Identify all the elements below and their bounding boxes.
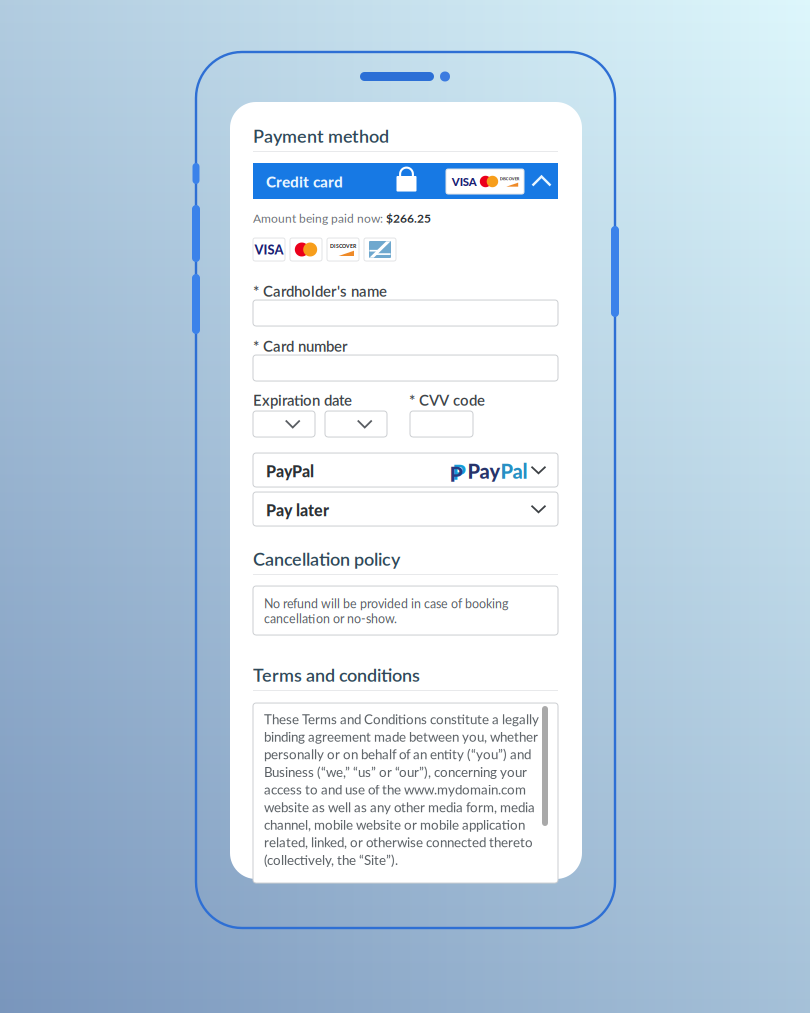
staticText: P <box>452 459 465 484</box>
staticText: $266.25 <box>386 211 431 225</box>
staticText: P <box>449 461 462 486</box>
button[interactable]: Select <box>325 411 387 437</box>
staticText: * Cardholder's name <box>253 282 387 300</box>
staticText: No refund will be provided in case of bo… <box>264 596 508 626</box>
staticText: Pay <box>467 459 500 483</box>
button[interactable]: Credit card <box>253 163 558 199</box>
staticText: Cancellation policy <box>253 548 400 570</box>
button[interactable]: Text field <box>253 355 558 381</box>
staticText: DISCOVER <box>500 176 520 181</box>
staticText: * Card number <box>253 337 348 355</box>
staticText: DISCOVER <box>330 243 356 249</box>
staticText: Pay later <box>266 500 329 520</box>
staticText: VISA <box>452 175 477 188</box>
button[interactable]: American Express <box>364 238 396 261</box>
staticText: * CVV code <box>409 391 485 409</box>
staticText: These Terms and Conditions constitute a … <box>264 711 539 868</box>
button[interactable]: Mastercard <box>290 238 322 261</box>
staticText: Credit card <box>266 172 343 191</box>
staticText: Terms and conditions <box>253 664 420 686</box>
button[interactable]: PayPal <box>253 453 558 487</box>
staticText: Pal <box>500 459 527 483</box>
staticText: PayPal <box>266 461 314 481</box>
button[interactable]: Discover <box>327 238 359 261</box>
staticText: Expiration date <box>253 391 352 409</box>
button[interactable]: Select <box>253 411 315 437</box>
staticText: VISA <box>254 242 283 257</box>
staticText: Amount being paid now: <box>253 211 386 225</box>
button[interactable]: Visa <box>253 238 285 261</box>
button[interactable]: Pay later <box>253 492 558 526</box>
button[interactable]: Text field <box>253 300 558 326</box>
staticText: Payment method <box>253 125 389 147</box>
button[interactable]: Text field <box>410 411 473 437</box>
